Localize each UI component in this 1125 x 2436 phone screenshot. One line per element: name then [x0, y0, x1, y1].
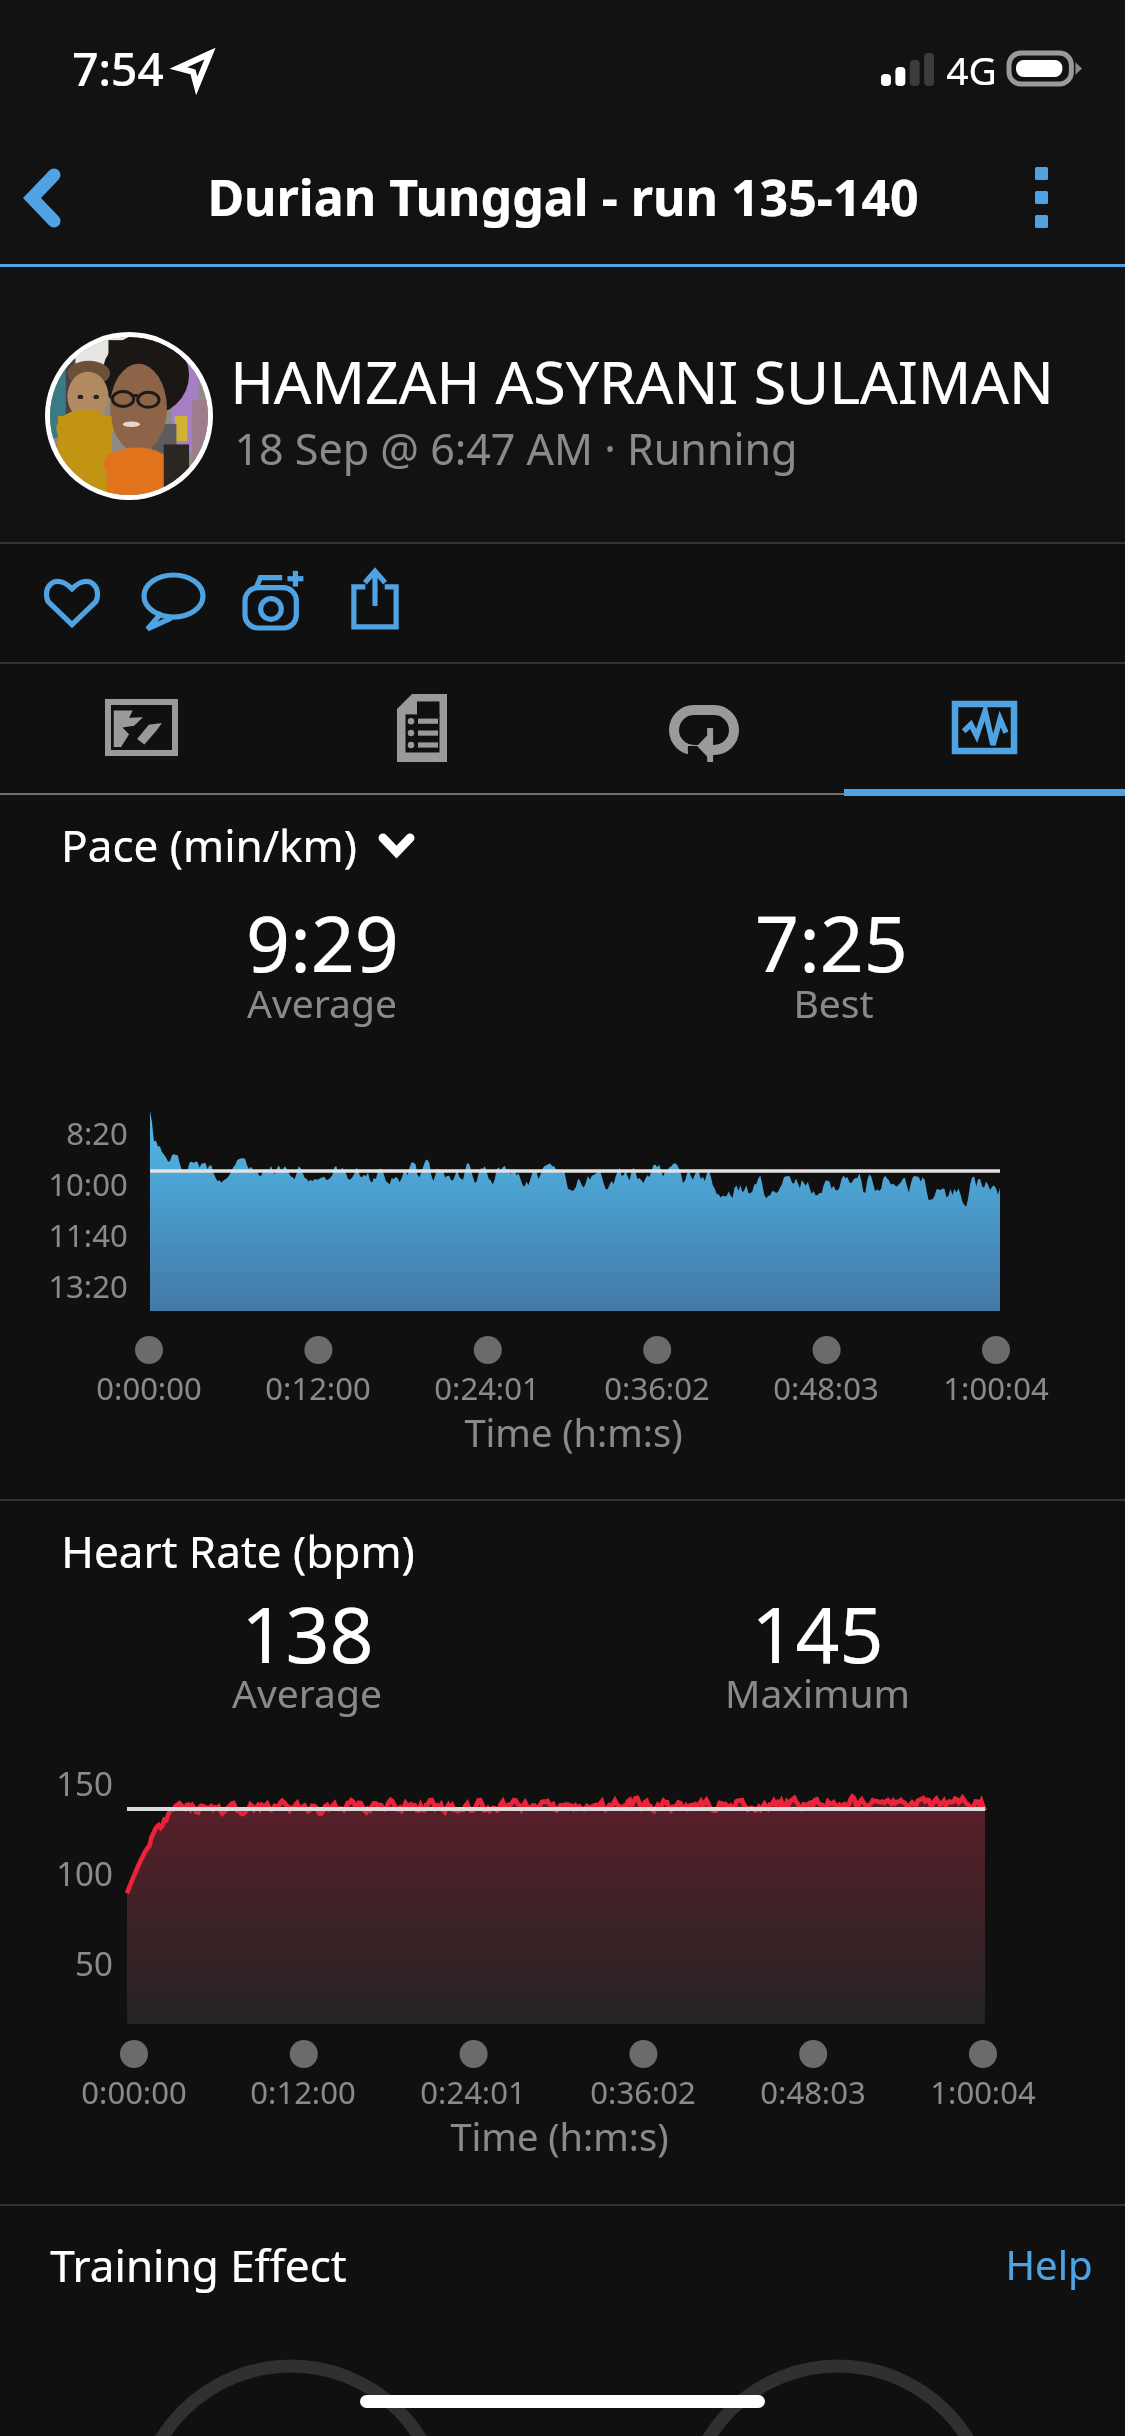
staticText: 18 Sep @ 6:47 AM · Running — [234, 419, 798, 478]
staticText: 150 — [56, 1761, 113, 1806]
staticText: 1:00:04 — [943, 1367, 1049, 1409]
button[interactable]: Share — [333, 552, 417, 646]
staticText: Best — [793, 976, 874, 1029]
staticText: HAMZAH ASYRANI SULAIMAN — [230, 341, 1054, 421]
button[interactable]: Comment — [124, 557, 223, 647]
staticText: 4G — [946, 43, 997, 96]
staticText: Durian Tunggal - run 135-140 — [207, 163, 919, 231]
staticText: 0:12:00 — [265, 1367, 371, 1409]
button[interactable]: Back — [0, 132, 112, 264]
staticText: 13:20 — [48, 1265, 128, 1307]
staticText: Pace (min/km) — [61, 815, 357, 875]
staticText: 8:20 — [66, 1112, 128, 1154]
button[interactable]: Add photo — [225, 554, 324, 646]
staticText: 145 — [751, 1581, 884, 1686]
staticText: 1:00:04 — [930, 2071, 1036, 2113]
staticText: 7:25 — [755, 890, 908, 995]
staticText: 0:12:00 — [250, 2071, 356, 2113]
staticText: 9:29 — [246, 890, 399, 995]
staticText: 0:36:02 — [590, 2071, 696, 2113]
staticText: Average — [232, 1666, 382, 1719]
staticText: 0:00:00 — [96, 1367, 202, 1409]
button[interactable]: HAMZAH ASYRANI SULAIMAN — [0, 267, 1125, 542]
staticText: Average — [247, 976, 397, 1029]
staticText: 50 — [75, 1941, 113, 1986]
button[interactable]: Pace (min/km) — [53, 808, 424, 882]
staticText: 138 — [241, 1581, 374, 1686]
staticText: 0:36:02 — [604, 1367, 710, 1409]
staticText: Heart Rate (bpm) — [61, 1521, 415, 1581]
button[interactable]: Help — [990, 2224, 1118, 2304]
staticText: 0:24:01 — [434, 1367, 540, 1409]
staticText: 7:54 — [72, 37, 164, 100]
staticText: Help — [1005, 2237, 1093, 2291]
staticText: 100 — [56, 1851, 113, 1896]
button[interactable]: Training Effect — [26, 2225, 370, 2305]
button[interactable]: More options — [1013, 132, 1125, 264]
button[interactable]: Map — [0, 664, 281, 793]
staticText: 11:40 — [48, 1214, 128, 1256]
staticText: 0:00:00 — [81, 2071, 187, 2113]
button[interactable]: Details — [281, 664, 562, 793]
staticText: 10:00 — [48, 1163, 128, 1205]
button[interactable]: Laps — [562, 664, 843, 793]
staticText: 0:48:03 — [760, 2071, 866, 2113]
staticText: 0:48:03 — [773, 1367, 879, 1409]
staticText: Training Effect — [50, 2235, 347, 2295]
button[interactable]: Charts — [843, 664, 1124, 793]
staticText: Time (h:m:s) — [450, 2110, 669, 2162]
staticText: Time (h:m:s) — [464, 1406, 683, 1458]
staticText: Maximum — [725, 1666, 910, 1719]
staticText: 0:24:01 — [420, 2071, 526, 2113]
button[interactable]: Like — [25, 560, 119, 643]
